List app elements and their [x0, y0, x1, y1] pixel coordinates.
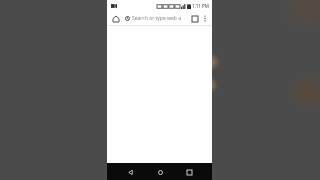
button[interactable]: Recent apps — [182, 165, 196, 179]
staticText: Search or type web a — [132, 15, 181, 22]
button[interactable]: Tabs — [189, 13, 200, 24]
button[interactable]: Search or type web a — [122, 13, 189, 23]
button[interactable]: Home — [110, 13, 121, 24]
button[interactable]: Home — [153, 165, 167, 179]
staticText: 1:11 PM — [192, 3, 209, 9]
button[interactable]: More options — [200, 14, 209, 23]
button[interactable]: Back — [123, 165, 137, 179]
